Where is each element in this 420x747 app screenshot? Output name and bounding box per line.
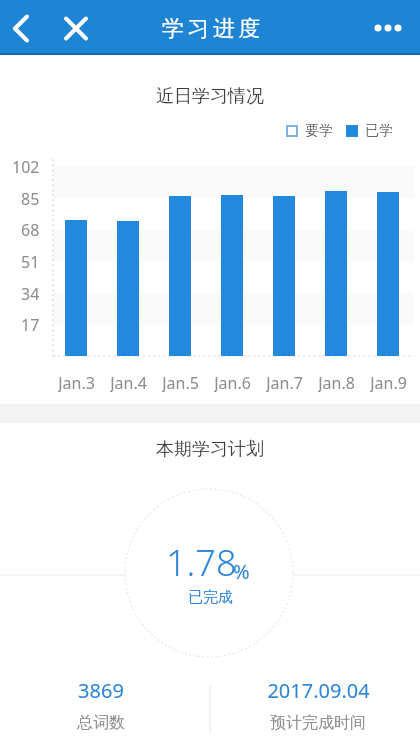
staticText: 17 [21, 314, 40, 334]
staticText: 本期学习计划 [156, 438, 264, 461]
staticText: 要学 [305, 122, 333, 140]
staticText: 2017.09.04 [267, 677, 370, 704]
staticText: 预计完成时间 [270, 713, 366, 733]
staticText: Jan.3 [58, 372, 95, 392]
staticText: 102 [12, 156, 40, 176]
staticText: 68 [21, 219, 40, 239]
staticText: 已学 [365, 122, 393, 140]
staticText: Jan.8 [318, 372, 355, 392]
staticText: 51 [21, 251, 40, 271]
staticText: Jan.5 [162, 372, 199, 392]
staticText: 34 [21, 283, 40, 303]
staticText: Jan.4 [110, 372, 147, 392]
staticText: 1.78 [166, 538, 237, 587]
staticText: Jan.7 [266, 372, 303, 392]
staticText: % [233, 558, 250, 585]
staticText: 85 [21, 188, 40, 208]
staticText: 学习进度 [160, 15, 262, 43]
staticText: 总词数 [77, 713, 125, 733]
staticText: 近日学习情况 [156, 85, 264, 108]
staticText: Jan.6 [214, 372, 251, 392]
staticText: 3869 [78, 677, 124, 704]
staticText: Jan.9 [370, 372, 407, 392]
staticText: 已完成 [188, 588, 233, 607]
